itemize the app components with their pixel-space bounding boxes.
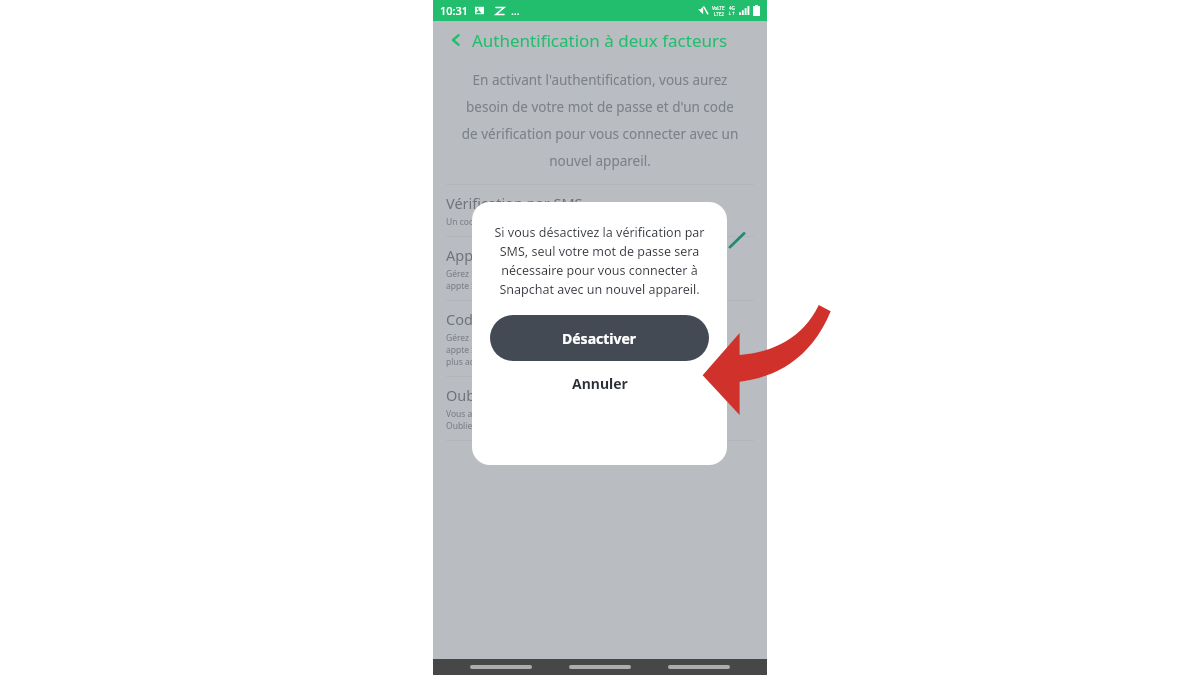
button[interactable]: Navigation key — [668, 665, 730, 669]
staticText: VoLTE — [712, 5, 725, 11]
staticText: Vous avez perdu l'accès à l'un de vos ap… — [446, 408, 686, 420]
staticText: Gérez les appareils connectés à votre — [446, 268, 594, 280]
staticText: Authentification à deux facteurs — [472, 29, 728, 52]
staticText: plus accès à votre téléphone — [446, 356, 560, 368]
button[interactable]: Code de récupération — [446, 309, 754, 368]
staticText: appte Snapchat — [446, 280, 509, 292]
button[interactable]: Annuler — [490, 361, 709, 405]
staticText: 4G — [729, 5, 735, 11]
staticText: Gérez les appareils connectés à votre — [446, 332, 594, 344]
staticText: ↓↑ — [728, 11, 736, 16]
button[interactable]: Vérification par SMS — [446, 193, 754, 228]
staticText: Un code vous sera envoyé par SMS — [446, 216, 585, 228]
staticText: Annuler — [572, 374, 628, 393]
staticText: appte Snapchat si vous n'avez — [446, 344, 565, 356]
staticText: Oublier un appareil — [446, 385, 578, 405]
staticText: Désactiver — [562, 329, 637, 348]
button[interactable]: Appareils authentifiés — [446, 245, 754, 292]
staticText: Appareils authentifiés — [446, 245, 595, 265]
button[interactable]: Désactiver — [490, 315, 709, 361]
staticText: En activant l'authentification, vous aur… — [459, 71, 741, 170]
staticText: 10:31 — [440, 3, 469, 18]
staticText: LTE2 — [714, 11, 724, 17]
staticText: Vérification par SMS — [446, 193, 583, 213]
button[interactable]: Navigation key — [569, 665, 631, 669]
button[interactable]: Oublier un appareil — [446, 385, 754, 432]
staticText: Si vous désactivez la vérification par S… — [490, 224, 709, 297]
button[interactable]: Back — [443, 27, 469, 53]
staticText: Oubliez-le ! — [446, 420, 491, 432]
staticText: … — [511, 3, 520, 18]
staticText: Code de récupération — [446, 309, 594, 329]
button[interactable]: Navigation key — [470, 665, 532, 669]
